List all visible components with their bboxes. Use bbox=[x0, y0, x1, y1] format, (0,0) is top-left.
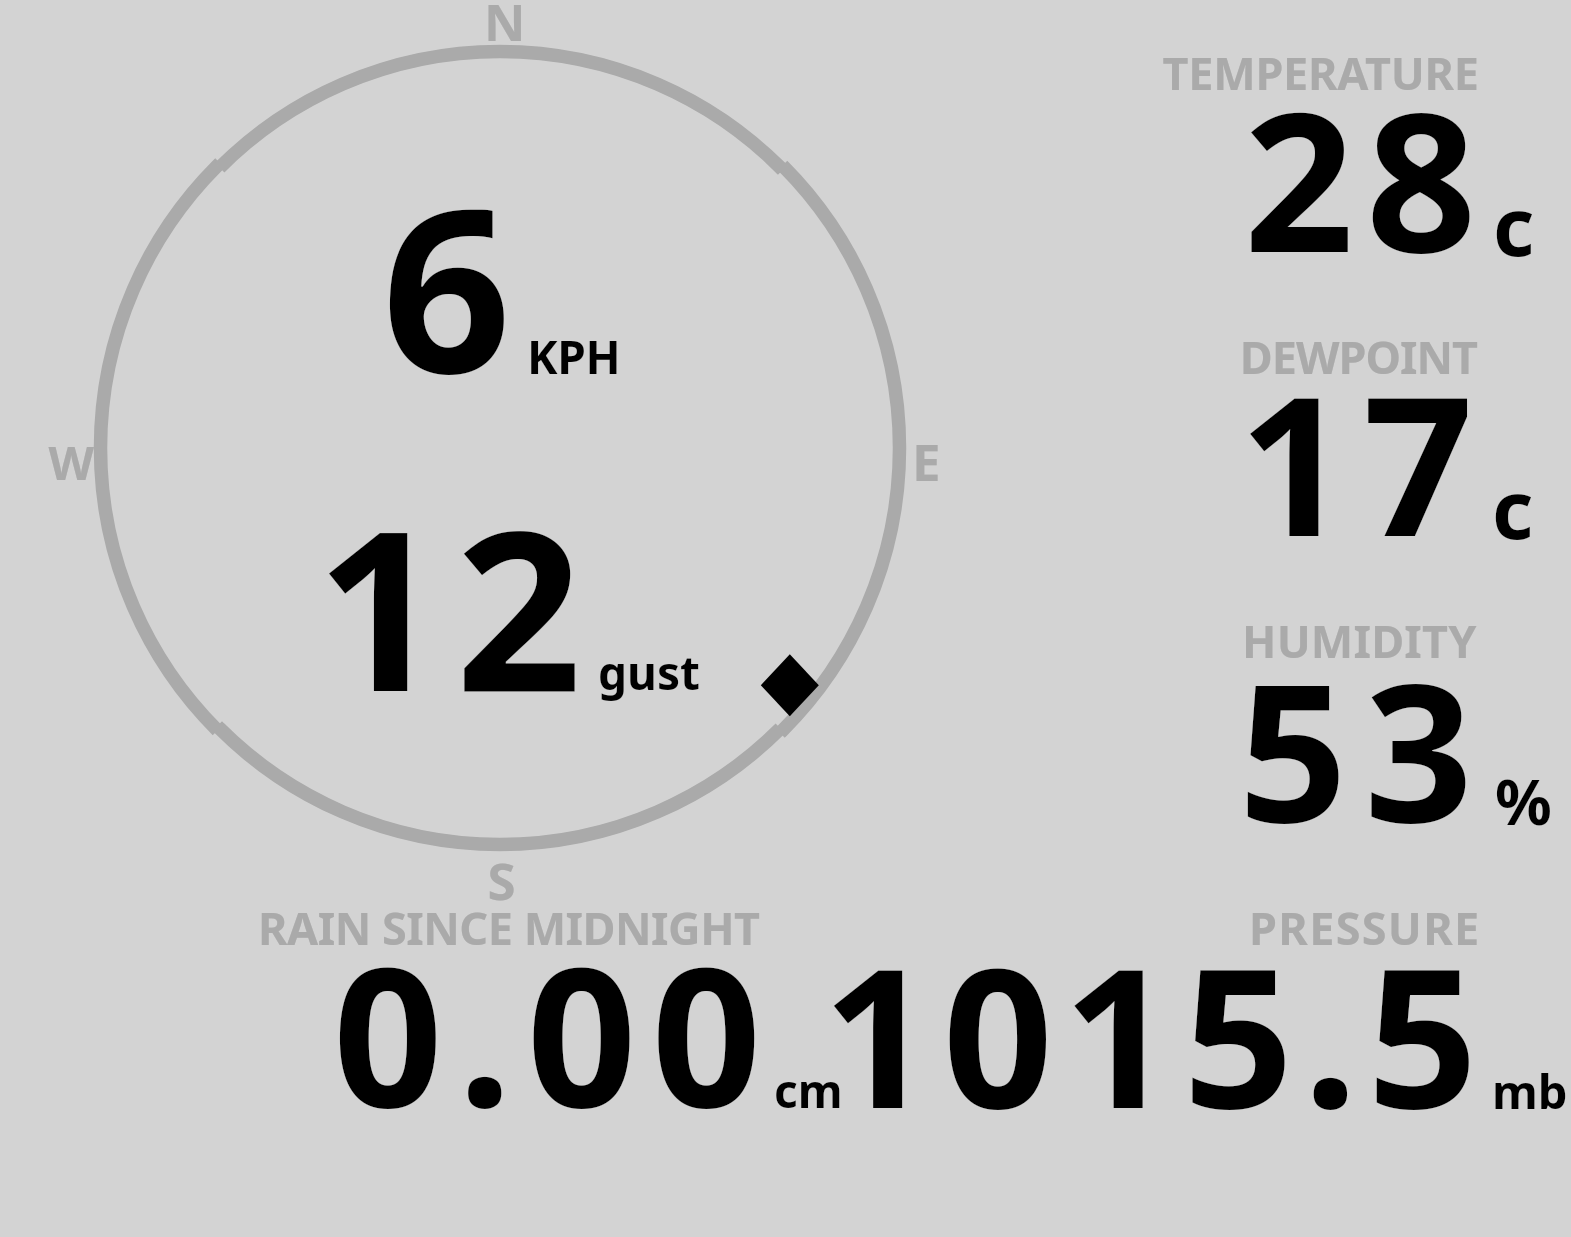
button[interactable]: Wind speed and direction compass bbox=[80, 20, 940, 880]
button[interactable]: Humidity 53 % bbox=[1150, 605, 1560, 840]
button[interactable]: Dewpoint 17 c bbox=[1150, 325, 1560, 555]
button[interactable]: Temperature 28 c bbox=[1150, 40, 1560, 270]
button[interactable]: Pressure 1015.5 mb bbox=[860, 895, 1565, 1125]
button[interactable]: Rain since midnight 0.00 cm bbox=[250, 895, 855, 1125]
